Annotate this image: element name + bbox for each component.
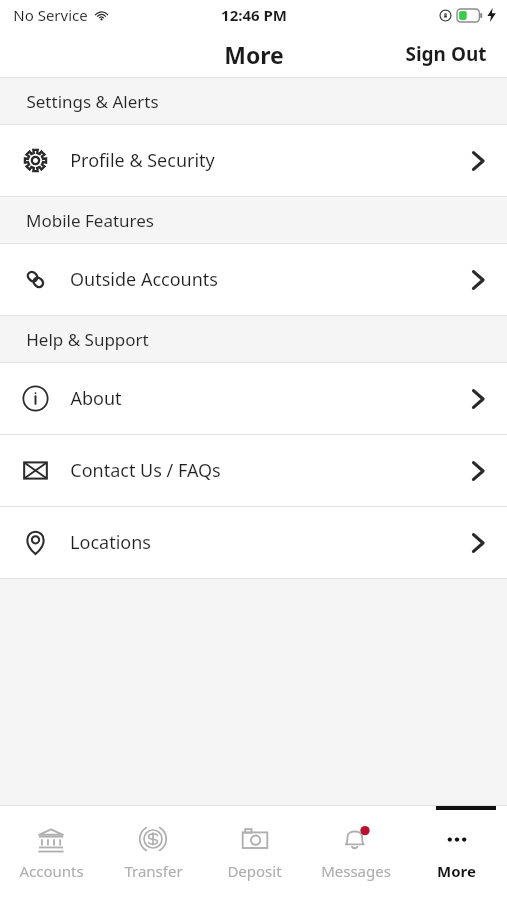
button[interactable]: More — [406, 810, 507, 900]
staticText: Settings & Alerts — [26, 90, 159, 113]
button[interactable]: Messages — [305, 810, 406, 900]
button[interactable]: About — [0, 363, 507, 435]
staticText: 12:46 PM — [221, 5, 287, 25]
staticText: Locations — [70, 530, 151, 555]
staticText: Sign Out — [405, 41, 487, 67]
staticText: Mobile Features — [26, 209, 154, 232]
staticText: More — [224, 39, 284, 70]
button[interactable]: Contact Us / FAQs — [0, 435, 507, 507]
button[interactable]: Locations — [0, 507, 507, 579]
staticText: Deposit — [227, 861, 282, 881]
button[interactable]: Outside Accounts — [0, 244, 507, 316]
staticText: Outside Accounts — [70, 267, 218, 292]
staticText: Transfer — [124, 861, 183, 881]
staticText: About — [70, 386, 122, 411]
button[interactable]: Profile & Security — [0, 125, 507, 197]
staticText: Messages — [321, 861, 391, 881]
button[interactable]: Accounts — [0, 810, 102, 900]
staticText: Help & Support — [26, 328, 149, 351]
staticText: No Service — [13, 5, 88, 25]
button[interactable]: Sign Out — [385, 33, 507, 75]
staticText: Profile & Security — [70, 148, 215, 173]
staticText: Contact Us / FAQs — [70, 458, 221, 483]
staticText: More — [437, 861, 476, 881]
button[interactable]: Transfer — [102, 810, 204, 900]
button[interactable]: Deposit — [204, 810, 305, 900]
staticText: Accounts — [19, 861, 84, 881]
